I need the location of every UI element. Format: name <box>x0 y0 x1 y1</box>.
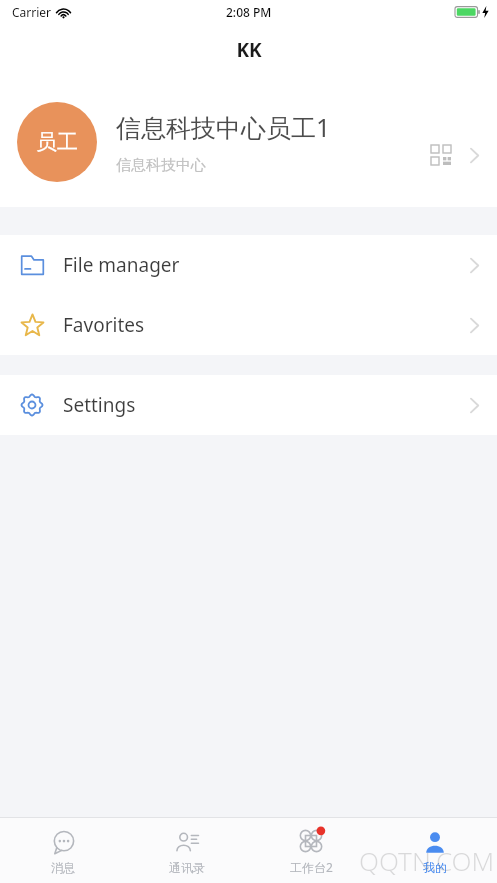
staticText: Favorites <box>63 312 469 338</box>
staticText: QQTN.COM <box>359 843 495 878</box>
staticText: 消息 <box>51 860 75 875</box>
staticText: 工作台2 <box>290 859 333 875</box>
button[interactable]: 工作台2 <box>249 818 373 883</box>
button[interactable]: File manager <box>0 235 497 295</box>
button[interactable]: Favorites <box>0 295 497 355</box>
button[interactable]: 消息 <box>0 818 125 883</box>
staticText: 2:08 PM <box>226 4 272 20</box>
button[interactable]: QR code <box>423 124 459 160</box>
staticText: 我的 <box>423 860 447 875</box>
staticText: 员工 <box>36 129 78 155</box>
staticText: File manager <box>63 252 469 278</box>
staticText: Carrier <box>12 4 52 20</box>
button[interactable]: Settings <box>0 375 497 435</box>
staticText: KK <box>236 37 262 63</box>
button[interactable]: 员工 <box>0 77 497 207</box>
staticText: Settings <box>63 392 469 418</box>
button[interactable]: 通讯录 <box>125 818 249 883</box>
button[interactable]: 我的 <box>373 818 497 883</box>
staticText: 信息科技中心员工1 <box>116 110 331 144</box>
staticText: 信息科技中心 <box>116 156 206 175</box>
staticText: 通讯录 <box>169 860 205 875</box>
